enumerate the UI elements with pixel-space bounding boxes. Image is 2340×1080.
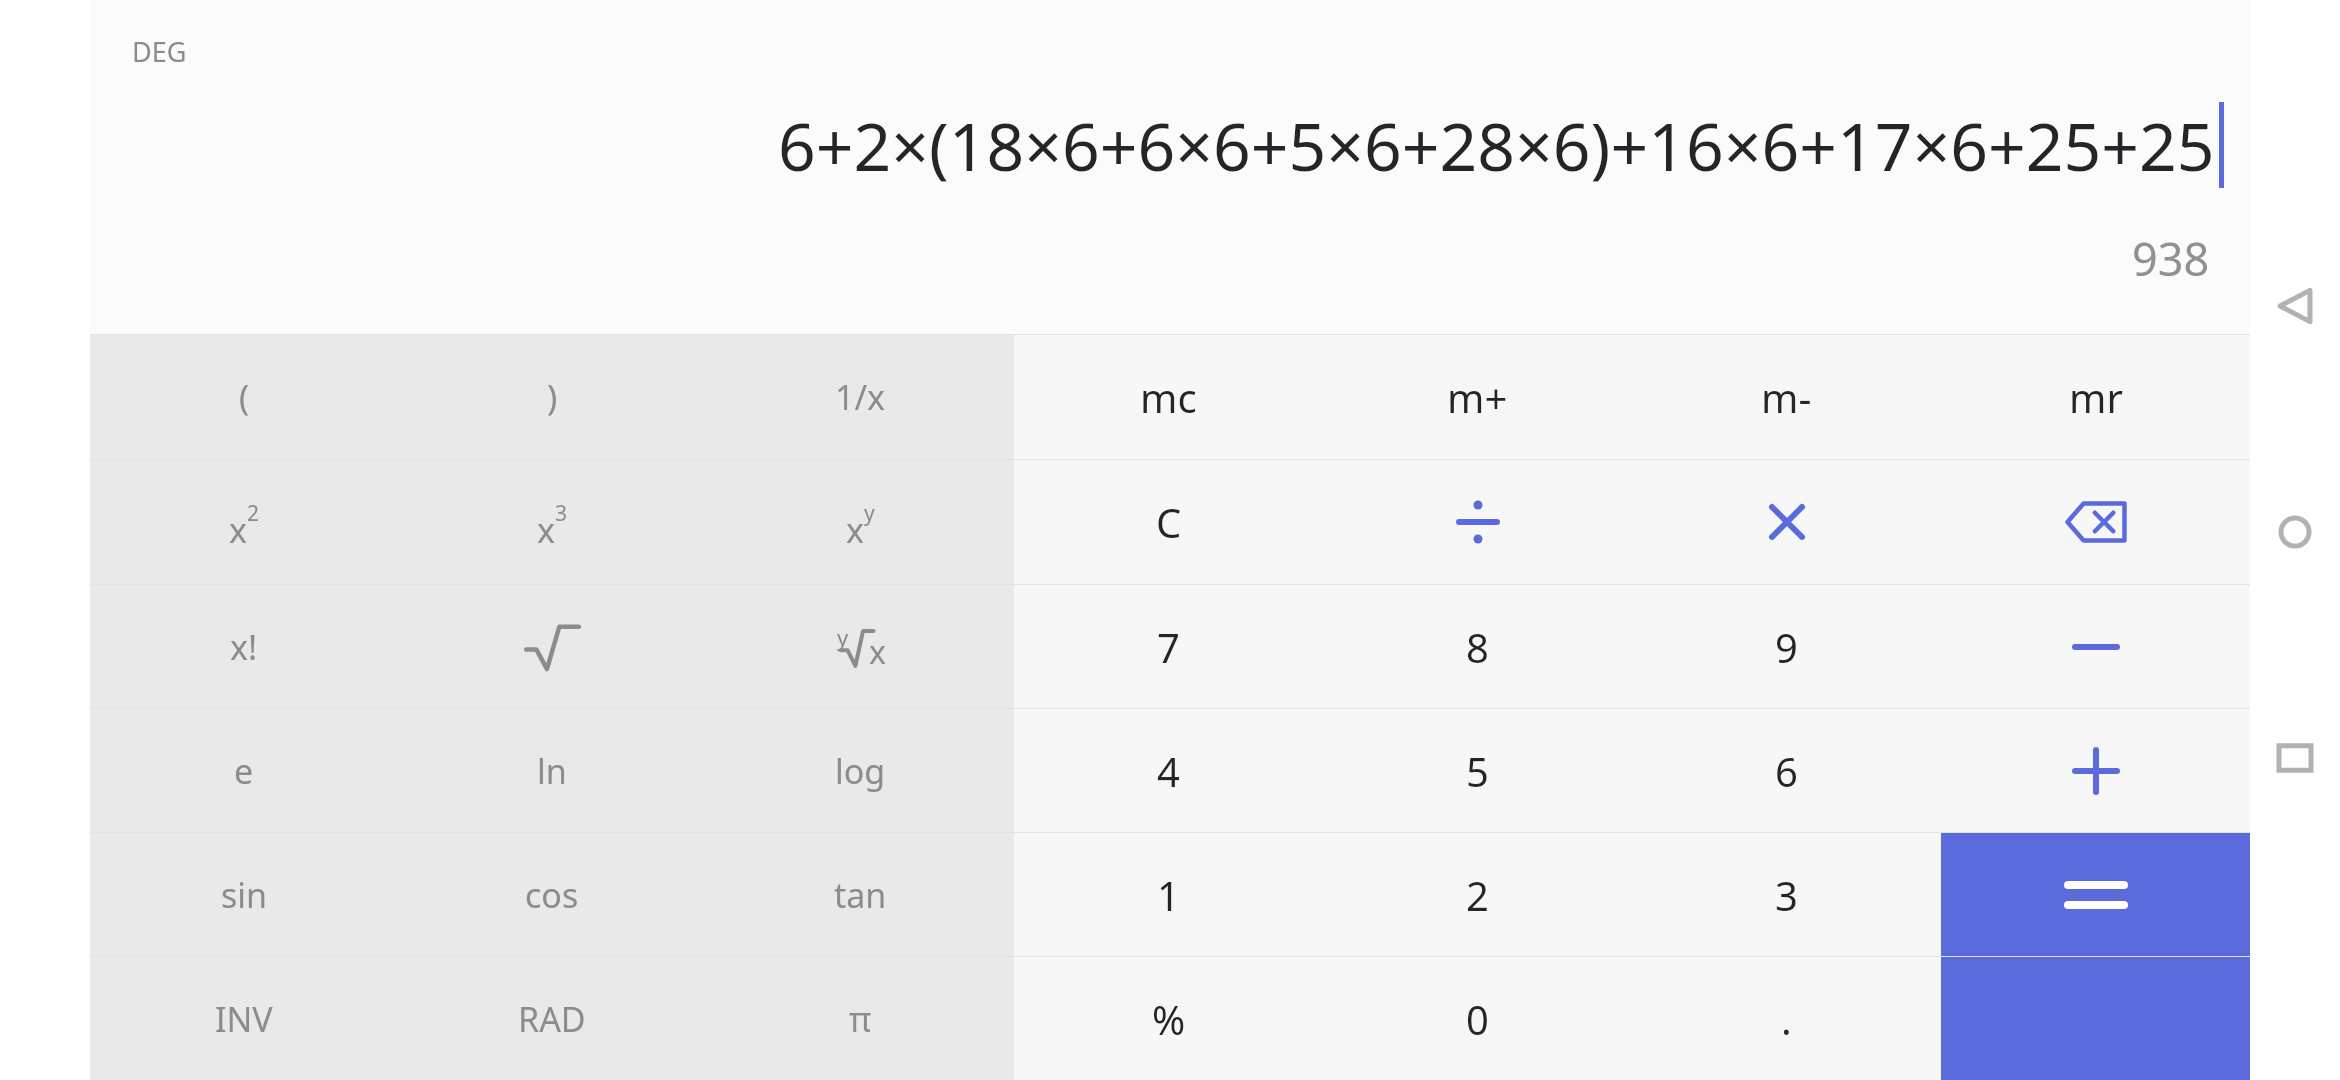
button[interactable]: Recents [2257, 720, 2333, 796]
staticText: cos [525, 872, 579, 918]
button[interactable]: mc [1014, 335, 1323, 459]
staticText: x [846, 507, 864, 553]
button[interactable]: 2 [1323, 833, 1632, 956]
staticText: 0 [1466, 992, 1489, 1046]
button[interactable]: x! [90, 585, 398, 708]
button[interactable]: ln [398, 709, 706, 832]
button[interactable]: 1 [1014, 833, 1323, 956]
staticText: tan [834, 872, 887, 918]
button[interactable]: ( [90, 335, 398, 459]
button[interactable]: e [90, 709, 398, 832]
staticText: 6 [1775, 744, 1798, 798]
staticText: INV [215, 996, 273, 1042]
button[interactable]: 1/x [706, 335, 1014, 459]
staticText: 3 [555, 499, 568, 528]
staticText: . [1781, 992, 1792, 1046]
staticText: e [234, 748, 254, 794]
button[interactable]: 0 [1323, 957, 1632, 1080]
button[interactable]: log [706, 709, 1014, 832]
staticText: 3 [1775, 868, 1798, 922]
staticText: 1/x [835, 374, 886, 420]
other: Plus [2072, 747, 2120, 795]
staticText: DEG [132, 33, 187, 70]
button[interactable]: . [1632, 957, 1941, 1080]
button[interactable]: x [90, 460, 398, 584]
other: Divide [1454, 498, 1502, 546]
staticText: ( [239, 374, 250, 420]
button[interactable]: tan [706, 833, 1014, 956]
button[interactable]: 6 [1632, 709, 1941, 832]
other: Equals [2068, 867, 2124, 923]
button[interactable]: 9 [1632, 585, 1941, 708]
other: Multiply [1763, 498, 1811, 546]
staticText: log [835, 748, 886, 794]
staticText: mr [2069, 370, 2123, 424]
staticText: % [1152, 992, 1186, 1046]
staticText: 4 [1157, 744, 1180, 798]
button[interactable]: % [1014, 957, 1323, 1080]
button[interactable]: Plus [1941, 709, 2250, 832]
button[interactable]: m+ [1323, 335, 1632, 459]
button[interactable]: Multiply [1632, 460, 1941, 584]
button[interactable]: x [398, 460, 706, 584]
button[interactable]: Divide [1323, 460, 1632, 584]
button[interactable]: 7 [1014, 585, 1323, 708]
staticText: x [229, 507, 247, 553]
button[interactable]: Delete [1941, 460, 2250, 584]
button[interactable]: C [1014, 460, 1323, 584]
staticText: 7 [1157, 620, 1180, 674]
other: Minus [2072, 623, 2120, 671]
button[interactable]: ) [398, 335, 706, 459]
button[interactable]: m- [1632, 335, 1941, 459]
staticText: 8 [1466, 620, 1489, 674]
other: Delete [2065, 501, 2127, 543]
button[interactable]: y [706, 585, 1014, 708]
staticText: ln [537, 748, 567, 794]
staticText: 2 [247, 499, 260, 528]
button[interactable]: Home [2257, 494, 2333, 570]
staticText: ) [547, 374, 558, 420]
staticText: 2 [1466, 868, 1489, 922]
staticText: x [869, 630, 886, 674]
staticText: 9 [1775, 620, 1798, 674]
staticText: mc [1140, 370, 1197, 424]
button[interactable]: Equals [1941, 833, 2250, 956]
staticText: 938 [2132, 228, 2210, 289]
staticText: 6+2×(18×6+6×6+5×6+28×6)+16×6+17×6+25+25 [778, 100, 2215, 190]
button[interactable]: mr [1941, 335, 2250, 459]
button[interactable]: x [706, 460, 1014, 584]
staticText: m- [1761, 370, 1812, 424]
staticText: π [849, 996, 872, 1042]
button[interactable]: RAD [398, 957, 706, 1080]
button[interactable]: 4 [1014, 709, 1323, 832]
staticText: x [537, 507, 555, 553]
button[interactable]: 3 [1632, 833, 1941, 956]
staticText: 1 [1157, 868, 1180, 922]
button[interactable]: cos [398, 833, 706, 956]
button[interactable]: Minus [1941, 585, 2250, 708]
button[interactable] [398, 585, 706, 708]
staticText: 5 [1466, 744, 1489, 798]
staticText: x! [230, 624, 258, 670]
staticText: y [837, 622, 849, 652]
button[interactable]: sin [90, 833, 398, 956]
staticText: y [864, 499, 875, 528]
staticText: C [1156, 495, 1182, 549]
staticText: sin [221, 872, 268, 918]
staticText: m+ [1447, 370, 1508, 424]
button[interactable]: Back [2257, 268, 2333, 344]
staticText: RAD [518, 996, 586, 1042]
button[interactable]: 8 [1323, 585, 1632, 708]
button[interactable]: π [706, 957, 1014, 1080]
button[interactable]: INV [90, 957, 398, 1080]
button[interactable]: 5 [1323, 709, 1632, 832]
